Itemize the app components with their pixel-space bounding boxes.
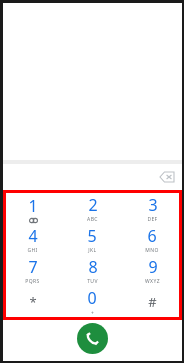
staticText: 6 (147, 225, 157, 247)
staticText: JKL (88, 247, 97, 254)
button[interactable]: 9 (122, 255, 182, 286)
button[interactable]: 8 (62, 255, 122, 286)
staticText: DEF (147, 216, 158, 223)
staticText: 1 (28, 195, 38, 217)
staticText: 0 (87, 287, 97, 309)
staticText: 2 (88, 194, 98, 216)
button[interactable]: * (3, 286, 62, 317)
staticText: 8 (88, 256, 98, 278)
button[interactable]: # (122, 286, 182, 317)
button[interactable]: 4 (3, 224, 62, 255)
button[interactable]: Backspace (156, 166, 178, 188)
button[interactable]: 1 (3, 193, 62, 224)
staticText: 4 (28, 225, 38, 247)
staticText: WXYZ (145, 278, 160, 285)
staticText: 7 (28, 256, 38, 278)
staticText: * (29, 293, 37, 311)
staticText: MNO (145, 247, 159, 254)
button[interactable]: 0 (62, 286, 122, 317)
staticText: 9 (148, 256, 158, 278)
staticText: GHI (27, 247, 38, 254)
staticText: TUV (87, 278, 98, 285)
button[interactable]: 2 (62, 193, 122, 224)
button[interactable]: 5 (62, 224, 122, 255)
staticText: 3 (148, 194, 158, 216)
button[interactable]: 6 (122, 224, 182, 255)
staticText: + (91, 310, 94, 317)
button[interactable]: 3 (122, 193, 182, 224)
button[interactable]: Call (77, 323, 108, 354)
button[interactable]: 7 (3, 255, 62, 286)
staticText: # (148, 293, 157, 311)
staticText: PQRS (25, 278, 40, 285)
staticText: ABC (87, 216, 98, 223)
staticText: 5 (87, 225, 97, 247)
